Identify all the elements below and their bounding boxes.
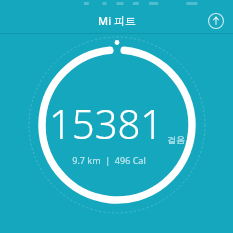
button[interactable]: Daily steps 15381 [0, 0, 233, 233]
staticText: Mi 피트 [98, 13, 136, 28]
staticText: 9.7 km | 496 Cal [72, 154, 146, 166]
staticText: 걸음 [167, 134, 185, 145]
staticText: 15381 [49, 96, 164, 150]
button[interactable]: Share [205, 10, 227, 32]
